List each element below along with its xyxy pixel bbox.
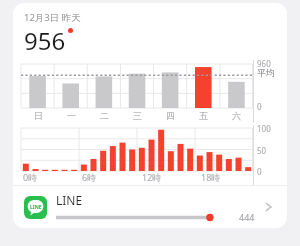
staticText: 三 [133, 110, 142, 121]
staticText: 0時 [23, 171, 38, 183]
button[interactable]: LINE [13, 186, 287, 228]
staticText: LINE [30, 204, 42, 211]
staticText: 五 [199, 110, 208, 121]
staticText: 956 [24, 24, 66, 57]
staticText: 二 [100, 110, 109, 121]
staticText: 50 [257, 145, 267, 156]
staticText: 100 [257, 123, 271, 134]
staticText: 一 [67, 110, 76, 121]
staticText: 444 [239, 211, 255, 223]
staticText: LINE [56, 192, 83, 208]
staticText: 四 [166, 110, 175, 121]
staticText: 六 [232, 110, 241, 121]
staticText: 12月3日 昨天 [24, 11, 81, 24]
staticText: 0 [257, 101, 262, 112]
staticText: 960 [257, 58, 271, 69]
staticText: 6時 [82, 171, 97, 183]
staticText: 18時 [201, 171, 221, 183]
other: 詳細を表示 [261, 198, 279, 216]
staticText: 日 [34, 110, 43, 121]
staticText: 平均 [257, 67, 275, 78]
staticText: 0 [257, 166, 262, 177]
staticText: 12時 [142, 171, 162, 183]
